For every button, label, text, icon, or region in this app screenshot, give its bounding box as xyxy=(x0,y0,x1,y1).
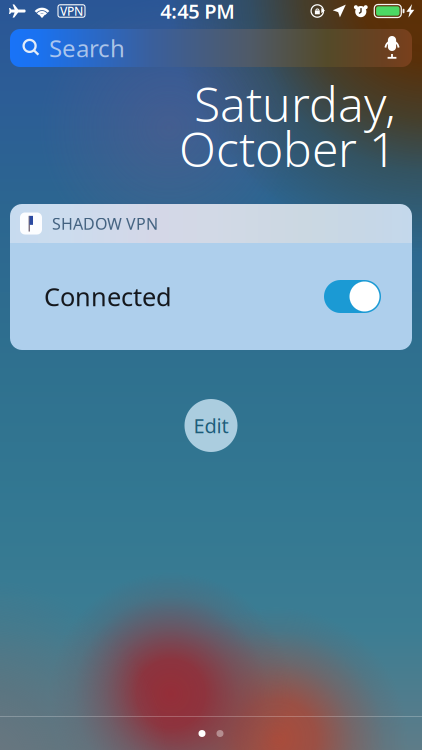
staticText: Connected xyxy=(44,280,172,313)
button[interactable]: Search xyxy=(10,29,412,67)
staticText: VPN xyxy=(60,3,83,19)
staticText: Search xyxy=(49,32,125,64)
staticText: Edit xyxy=(193,412,228,439)
staticText: Saturday, xyxy=(194,72,396,135)
staticText: SHADOW VPN xyxy=(52,213,158,234)
staticText: 4:45 PM xyxy=(160,0,235,24)
button[interactable]: VPN, Connected, on xyxy=(324,280,381,313)
staticText: October 1 xyxy=(179,117,396,180)
button[interactable]: Edit xyxy=(184,399,237,452)
